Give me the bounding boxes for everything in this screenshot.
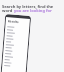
button[interactable] bbox=[2, 61, 26, 66]
button[interactable] bbox=[2, 64, 26, 69]
button[interactable] bbox=[5, 25, 29, 30]
button[interactable] bbox=[4, 40, 28, 45]
button[interactable] bbox=[3, 52, 27, 57]
button[interactable] bbox=[5, 31, 29, 36]
button[interactable] bbox=[4, 43, 28, 48]
staticText: you are looking for bbox=[14, 8, 52, 13]
button[interactable] bbox=[3, 46, 28, 51]
staticText: Results bbox=[8, 19, 19, 24]
button[interactable] bbox=[3, 58, 27, 63]
button[interactable] bbox=[4, 37, 28, 42]
staticText: Search by letters, find the bbox=[2, 4, 54, 9]
button[interactable] bbox=[3, 55, 27, 60]
button[interactable] bbox=[4, 34, 29, 39]
button[interactable] bbox=[5, 28, 29, 33]
button[interactable] bbox=[3, 49, 27, 54]
staticText: word bbox=[2, 8, 14, 13]
